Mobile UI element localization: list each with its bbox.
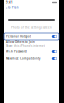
staticText: Maximize Compatibility bbox=[6, 57, 40, 60]
button[interactable]: Wi-Fi Password bbox=[4, 48, 59, 55]
staticText: Allow Others to Join bbox=[6, 40, 35, 44]
staticText: 9:41 bbox=[6, 1, 13, 4]
staticText: Photo of the settings screen bbox=[11, 26, 52, 29]
button[interactable]: ‹ bbox=[4, 5, 59, 10]
button[interactable]: Allow Others to Join bbox=[4, 40, 59, 48]
button[interactable]: Maximize Compatibility bbox=[4, 55, 59, 62]
staticText: Wi-Fi Password bbox=[6, 50, 27, 53]
staticText: Share this iPhone's internet bbox=[6, 44, 45, 48]
staticText: ‹ bbox=[6, 5, 7, 10]
staticText: To Plan bbox=[8, 6, 19, 9]
staticText: Personal Hotspot bbox=[6, 35, 31, 38]
button[interactable]: Personal Hotspot bbox=[4, 33, 59, 40]
